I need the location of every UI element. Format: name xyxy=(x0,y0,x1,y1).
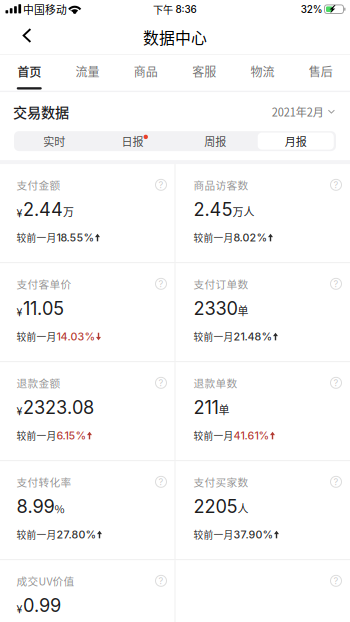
staticText: 2205 xyxy=(193,495,237,517)
staticText: 0.99 xyxy=(23,594,61,616)
staticText: 数据中心 xyxy=(143,25,207,48)
button[interactable]: 支付金额 xyxy=(0,164,174,262)
staticText: 较前一月 xyxy=(193,428,233,443)
button[interactable]: 售后 xyxy=(292,55,350,91)
staticText: 2330 xyxy=(193,297,237,319)
staticText: ? xyxy=(333,377,338,388)
staticText: ? xyxy=(333,179,338,190)
staticText: 首页 xyxy=(17,63,41,80)
staticText: 周报 xyxy=(204,133,226,149)
staticText: 物流 xyxy=(250,63,274,80)
staticText: 支付客单价 xyxy=(16,276,71,291)
staticText: 较前一月 xyxy=(16,527,56,542)
staticText: ? xyxy=(158,278,163,289)
staticText: 日报 xyxy=(121,133,143,149)
staticText: ? xyxy=(333,278,338,289)
staticText: 18.55% xyxy=(56,231,94,244)
button[interactable]: 商品 xyxy=(117,55,175,91)
staticText: 售后 xyxy=(309,63,333,80)
staticText: 客服 xyxy=(192,63,216,80)
button[interactable]: 实时 xyxy=(14,131,94,151)
staticText: 较前一月 xyxy=(16,230,56,245)
staticText: 较前一月 xyxy=(193,230,233,245)
button[interactable]: 退款金额 xyxy=(0,362,174,460)
staticText: 2.45 xyxy=(193,198,232,220)
button[interactable]: 支付订单数 xyxy=(175,263,349,361)
button[interactable]: 商品访客数 xyxy=(175,164,349,262)
staticText: 成交UV价值 xyxy=(16,573,74,588)
staticText: 27.80% xyxy=(56,528,96,541)
button[interactable]: 日报 xyxy=(94,131,175,151)
staticText: 支付买家数 xyxy=(193,474,248,489)
staticText: 中国移动 xyxy=(23,2,67,17)
staticText: ? xyxy=(333,476,338,487)
staticText: ? xyxy=(333,575,338,586)
button[interactable]: 物流 xyxy=(233,55,292,91)
staticText: 单 xyxy=(237,303,248,318)
staticText: 6.15% xyxy=(56,429,86,442)
staticText: 支付金额 xyxy=(16,177,60,192)
staticText: 8:36 xyxy=(175,3,196,15)
button[interactable]: 周报 xyxy=(175,131,255,151)
staticText: 交易数据 xyxy=(13,101,69,122)
staticText: 37.90% xyxy=(233,528,273,541)
staticText: 下午 xyxy=(153,2,173,17)
staticText: 14.03% xyxy=(56,330,95,343)
staticText: 较前一月 xyxy=(193,329,233,344)
staticText: ¥ xyxy=(16,603,22,616)
staticText: 万人 xyxy=(232,204,254,219)
staticText: 11.05 xyxy=(23,297,64,319)
staticText: 月报 xyxy=(285,133,307,149)
staticText: 支付转化率 xyxy=(16,474,71,489)
button[interactable]: 返回 xyxy=(0,20,46,54)
staticText: 41.61% xyxy=(233,429,269,442)
button[interactable]: 支付客单价 xyxy=(0,263,174,361)
staticText: 32% xyxy=(301,3,323,15)
button[interactable]: 流量 xyxy=(58,55,117,91)
staticText: 退款金额 xyxy=(16,375,60,390)
staticText: 商品 xyxy=(134,63,158,80)
staticText: 2.44 xyxy=(23,198,63,220)
staticText: 万 xyxy=(63,204,74,219)
staticText: 退款单数 xyxy=(193,375,237,390)
staticText: 流量 xyxy=(75,63,99,80)
staticText: 较前一月 xyxy=(16,428,56,443)
staticText: 8.99 xyxy=(16,495,54,517)
staticText: ? xyxy=(158,179,163,190)
staticText: 较前一月 xyxy=(193,527,233,542)
staticText: 2021年2月 xyxy=(272,104,324,120)
button[interactable]: 客服 xyxy=(175,55,233,91)
staticText: 211 xyxy=(193,396,218,418)
staticText: ¥ xyxy=(16,207,22,220)
button[interactable]: 支付转化率 xyxy=(0,461,174,559)
staticText: ? xyxy=(158,476,163,487)
staticText: ¥ xyxy=(16,306,22,319)
button[interactable]: 退款单数 xyxy=(175,362,349,460)
staticText: 21.48% xyxy=(233,330,272,343)
button[interactable]: 成交UV价值 xyxy=(0,560,174,622)
staticText: 单 xyxy=(218,402,229,417)
staticText: ? xyxy=(158,575,163,586)
staticText: 2323.08 xyxy=(23,396,94,418)
button[interactable]: 首页 xyxy=(0,55,58,91)
staticText: 较前一月 xyxy=(16,329,56,344)
staticText: ¥ xyxy=(16,405,22,418)
staticText: 支付订单数 xyxy=(193,276,248,291)
staticText: 人 xyxy=(237,501,248,516)
staticText: 实时 xyxy=(43,133,65,149)
staticText: 8.02% xyxy=(233,231,267,244)
staticText: ? xyxy=(158,377,163,388)
button[interactable]: 支付买家数 xyxy=(175,461,349,559)
staticText: % xyxy=(54,501,64,516)
button[interactable]: 2021年2月 xyxy=(272,98,335,126)
button[interactable]: 月报 xyxy=(255,131,336,151)
staticText: 商品访客数 xyxy=(193,177,248,192)
